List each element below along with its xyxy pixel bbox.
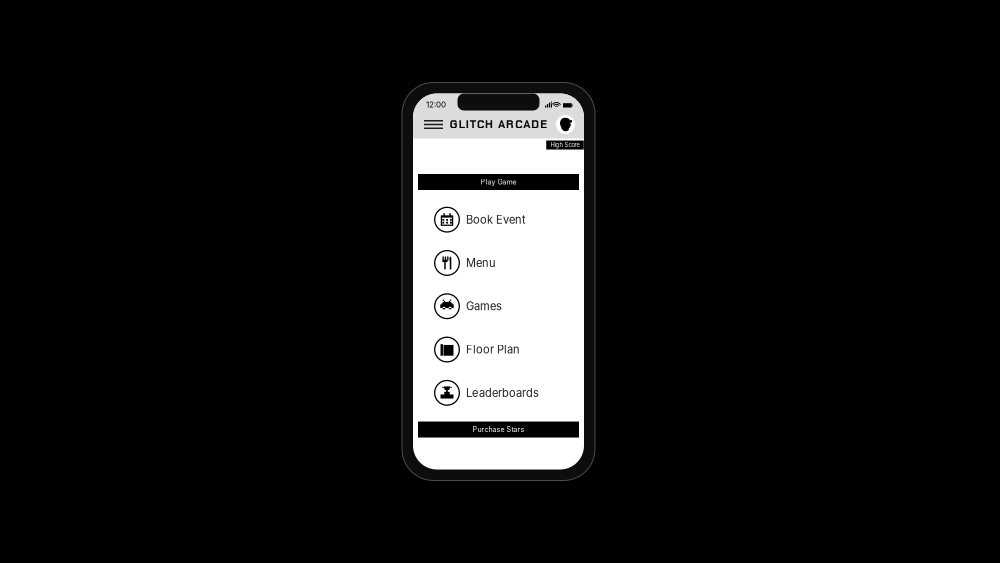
staticText: 12:00 [426,100,446,109]
staticText: Book Event [466,213,526,226]
staticText: GLITCH ARCADE [450,117,547,132]
button[interactable]: High Score [546,140,584,149]
staticText: Purchase Stars [472,425,524,434]
button[interactable]: Open menu [422,114,445,135]
button[interactable]: Play Game [418,174,579,190]
staticText: Floor Plan [466,343,520,356]
button[interactable]: Leaderboards [413,371,584,414]
button[interactable]: Profile [556,115,575,134]
button[interactable]: Menu [413,241,584,285]
staticText: Play Game [480,178,516,186]
staticText: Menu [466,256,496,270]
staticText: Games [466,300,502,313]
button[interactable]: Floor Plan [413,328,584,371]
staticText: Leaderboards [466,386,539,400]
button[interactable]: Book Event [413,198,584,241]
button[interactable]: Games [413,285,584,328]
button[interactable]: Purchase Stars [418,421,579,437]
staticText: High Score [550,141,579,148]
